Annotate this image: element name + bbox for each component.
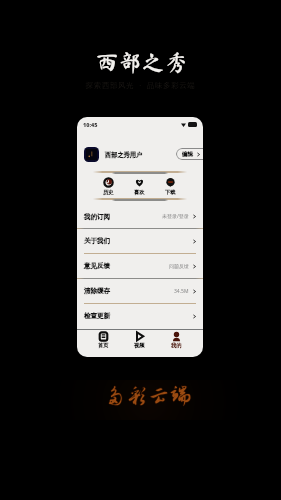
staticText: 意见反馈 xyxy=(84,262,110,270)
button[interactable]: 检查更新 xyxy=(84,304,197,328)
staticText: 问题反馈 xyxy=(169,263,189,269)
staticText: 探索西部风光 · 品味多彩云端 xyxy=(0,80,281,90)
staticText: 多彩云端 xyxy=(8,384,281,407)
staticText: 喜欢 xyxy=(134,189,145,196)
staticText: 未登录/登录 xyxy=(162,213,189,220)
staticText: 34.5M xyxy=(174,288,189,295)
staticText: 视频 xyxy=(134,342,145,349)
button[interactable]: 首页 xyxy=(89,332,117,349)
staticText: 编辑 xyxy=(182,151,193,158)
button[interactable]: 关于我们 xyxy=(84,229,197,253)
staticText: 清除缓存 xyxy=(84,287,110,295)
button[interactable]: 历史 xyxy=(94,178,122,196)
button[interactable]: 下载 xyxy=(156,178,184,196)
staticText: 10:45 xyxy=(83,121,98,128)
staticText: 多彩云端 xyxy=(8,386,281,409)
staticText: 西部之秀 xyxy=(1,51,281,74)
button[interactable]: 我的 xyxy=(162,332,190,349)
staticText: 下载 xyxy=(165,189,176,196)
staticText: 首页 xyxy=(98,342,109,349)
button[interactable]: 清除缓存 xyxy=(84,279,197,303)
staticText: 多彩云端 xyxy=(8,385,281,408)
button[interactable]: Avatar xyxy=(84,147,99,162)
button[interactable]: 我的订阅 xyxy=(84,205,197,228)
button[interactable]: 编辑 xyxy=(182,148,203,160)
staticText: 关于我们 xyxy=(84,237,110,245)
staticText: 历史 xyxy=(103,189,114,196)
staticText: 我的订阅 xyxy=(84,213,110,221)
staticText: 检查更新 xyxy=(84,312,110,320)
button[interactable]: 喜欢 xyxy=(125,178,153,196)
staticText: 多彩云端 xyxy=(9,385,281,408)
button[interactable]: 视频 xyxy=(125,332,153,349)
staticText: 我的 xyxy=(171,342,182,349)
button[interactable]: 意见反馈 xyxy=(84,254,197,278)
staticText: 西部之秀用户 xyxy=(105,151,143,159)
staticText: 多彩云端 xyxy=(7,385,281,408)
